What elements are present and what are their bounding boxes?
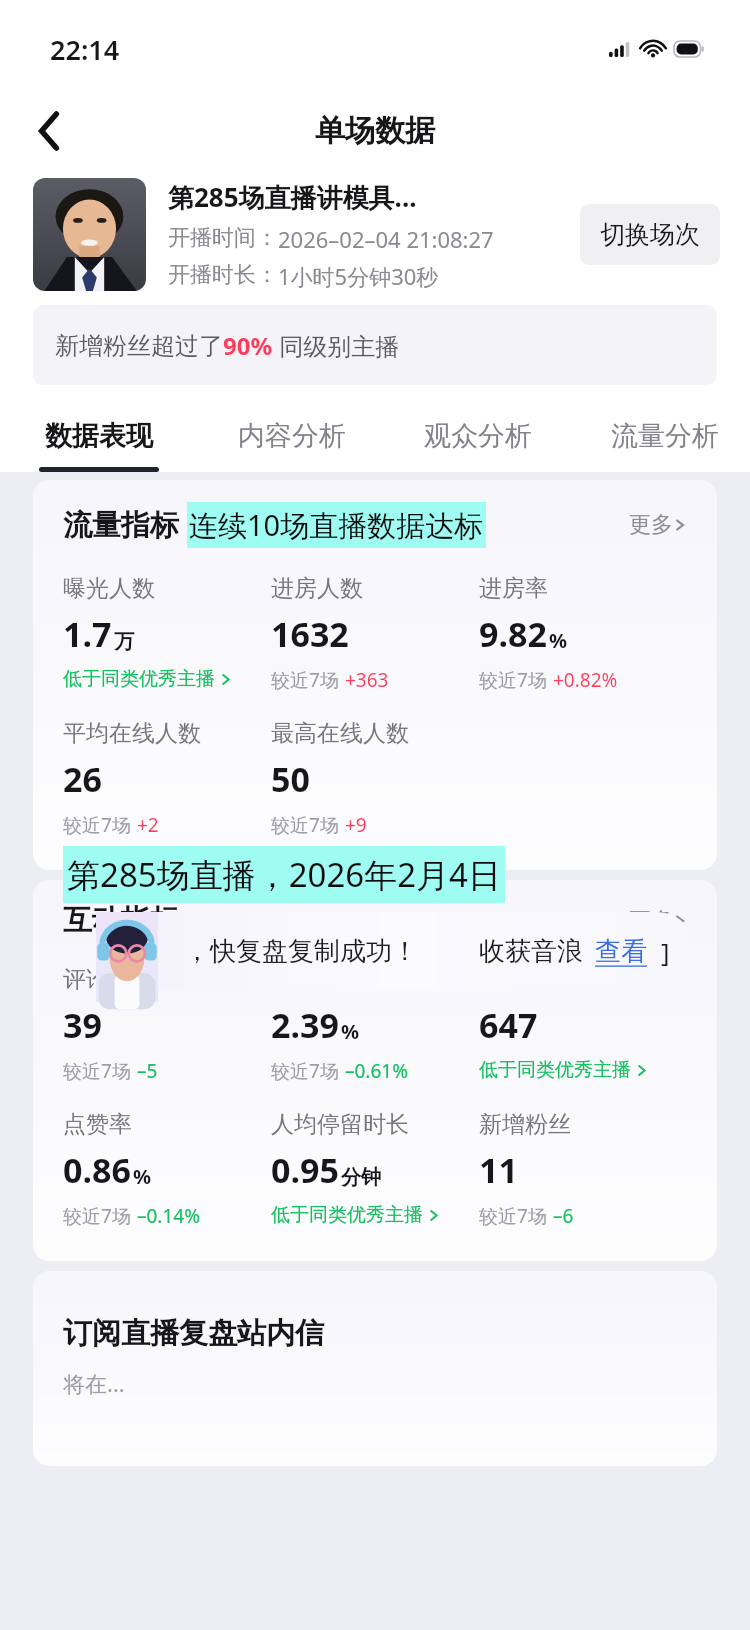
staticText: –6 — [553, 1203, 574, 1229]
staticText: 将在... — [63, 1368, 125, 1398]
staticText: 1.7 — [63, 611, 112, 657]
staticText: 进房人数 — [271, 574, 363, 603]
staticText: 较近7场 — [479, 667, 547, 693]
staticText: 39 — [63, 1002, 102, 1048]
staticText: 1632 — [271, 611, 349, 657]
staticText: 评论人数 — [63, 965, 155, 994]
staticText: 万 — [114, 629, 134, 654]
staticText: 50 — [271, 756, 310, 802]
button[interactable]: Back — [22, 103, 78, 159]
button[interactable]: 更多 — [629, 511, 687, 539]
staticText: 数据表现 — [45, 419, 153, 453]
staticText: 流量指标 — [63, 507, 179, 544]
staticText: 22:14 — [50, 31, 120, 68]
staticText: +9 — [345, 812, 367, 838]
staticText: 人均停留时长 — [271, 1110, 409, 1139]
staticText: 开播时间： — [168, 224, 278, 252]
button[interactable]: 切换场次 — [580, 204, 720, 265]
button[interactable]: Avatar — [33, 178, 146, 291]
staticText: 分钟 — [341, 1165, 381, 1190]
staticText: 较近7场 — [479, 1203, 547, 1229]
staticText: –0.14% — [137, 1203, 200, 1229]
staticText: 更多 — [629, 511, 673, 539]
staticText: 观众分析 — [424, 419, 532, 453]
button[interactable]: 进房人数 — [271, 574, 389, 693]
staticText: 647 — [479, 1002, 538, 1048]
button[interactable]: 平均在线人数 — [63, 719, 201, 838]
staticText: 9.82 — [479, 611, 547, 657]
staticText: 2.39 — [271, 1002, 339, 1048]
staticText: 同级别主播 — [273, 329, 400, 362]
button[interactable]: 人均停留时长 — [271, 1110, 440, 1227]
button[interactable]: 曝光人数 — [63, 574, 232, 691]
button[interactable]: 新增粉丝超过了 — [33, 305, 717, 385]
staticText: –0.61% — [345, 1058, 408, 1084]
button[interactable]: 更多 — [629, 907, 687, 935]
button[interactable]: 点赞率 — [63, 1110, 200, 1229]
staticText: 收获音浪 — [479, 935, 583, 968]
button[interactable]: 评论率 — [271, 965, 408, 1084]
staticText: 第285场直播，2026年2月4日 — [67, 852, 501, 897]
staticText: 第285场直播讲模具... — [168, 179, 417, 215]
staticText: 进房率 — [479, 574, 548, 603]
staticText: 较近7场 — [63, 1058, 131, 1084]
staticText: 低于同类优秀主播 — [271, 1203, 423, 1227]
button[interactable]: 观众分析 — [418, 419, 538, 472]
staticText: 开播时长： — [168, 261, 278, 289]
staticText: 流量分析 — [611, 419, 719, 453]
staticText: 11 — [479, 1147, 518, 1193]
staticText: 较近7场 — [63, 812, 131, 838]
staticText: 曝光人数 — [63, 574, 155, 603]
staticText: % — [341, 1018, 360, 1045]
staticText: % — [549, 627, 568, 654]
staticText: 26 — [63, 756, 102, 802]
staticText: +363 — [345, 667, 389, 693]
staticText: 更多 — [629, 907, 673, 935]
staticText: 订阅直播复盘站内信 — [63, 1315, 324, 1352]
staticText: 新增粉丝 — [479, 1110, 571, 1139]
staticText: 2026–02–04 21:08:27 — [278, 224, 494, 254]
staticText: 0.86 — [63, 1147, 131, 1193]
staticText: +0.82% — [553, 667, 618, 693]
staticText: 较近7场 — [271, 812, 339, 838]
button[interactable]: 点赞次数 — [479, 965, 648, 1082]
staticText: 低于同类优秀主播 — [479, 1058, 631, 1082]
staticText: 平均在线人数 — [63, 719, 201, 748]
button[interactable]: ，快复盘复制成功！ — [100, 912, 696, 991]
staticText: ] — [661, 934, 670, 969]
staticText: 较近7场 — [63, 1203, 131, 1229]
button[interactable]: 数据表现 — [33, 419, 165, 472]
button[interactable]: 新增粉丝 — [479, 1110, 574, 1229]
staticText: –5 — [137, 1058, 158, 1084]
staticText: 低于同类优秀主播 — [63, 667, 215, 691]
button[interactable]: 内容分析 — [232, 419, 352, 472]
staticText: 最高在线人数 — [271, 719, 409, 748]
staticText: 较近7场 — [271, 1058, 339, 1084]
staticText: 切换场次 — [600, 219, 700, 250]
staticText: 0.95 — [271, 1147, 339, 1193]
staticText: ，快复盘复制成功！ — [184, 935, 418, 968]
button[interactable]: 进房率 — [479, 574, 618, 693]
button[interactable]: 评论人数 — [63, 965, 158, 1084]
button[interactable]: 最高在线人数 — [271, 719, 409, 838]
button[interactable]: 流量分析 — [605, 419, 725, 472]
staticText: 较近7场 — [271, 667, 339, 693]
staticText: 90% — [223, 329, 273, 362]
staticText: 1小时5分钟30秒 — [278, 261, 439, 291]
button[interactable]: 查看 — [595, 935, 647, 968]
staticText: 新增粉丝超过了 — [55, 331, 223, 361]
staticText: 点赞率 — [63, 1110, 132, 1139]
staticText: 连续10场直播数据达标 — [189, 505, 484, 545]
staticText: +2 — [137, 812, 159, 838]
staticText: % — [133, 1163, 152, 1190]
staticText: 单场数据 — [315, 112, 435, 150]
staticText: 互动指标 — [63, 902, 179, 939]
staticText: 内容分析 — [238, 419, 346, 453]
